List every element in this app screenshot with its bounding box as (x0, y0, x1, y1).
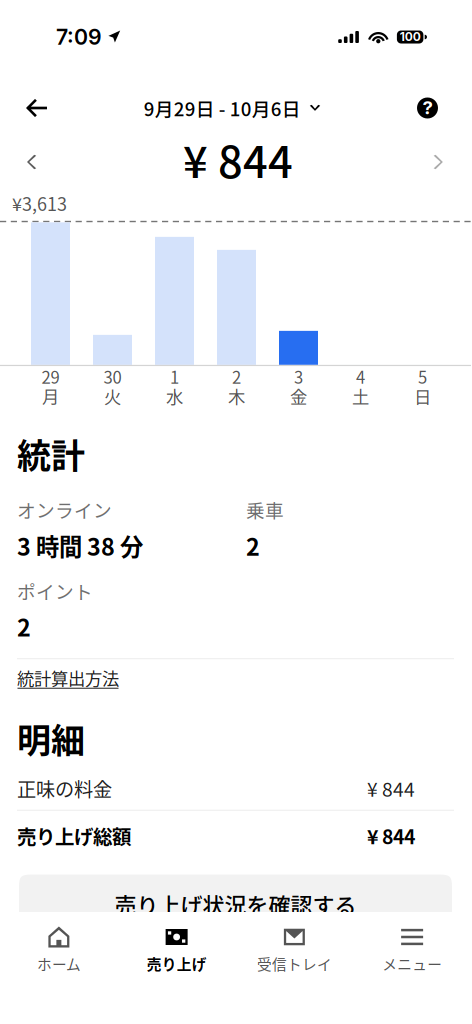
button[interactable]: ホーム (0, 912, 118, 1024)
staticText: 統計算出方法 (17, 665, 119, 690)
staticText: 日 (414, 383, 431, 409)
button[interactable]: 次の週 (418, 143, 471, 181)
staticText: 正味の料金 (17, 774, 112, 802)
staticText: ポイント (17, 577, 93, 604)
staticText: 2 (232, 364, 241, 388)
staticText: 土 (352, 383, 369, 409)
button[interactable]: 9月29日 - 10月6日 (144, 80, 320, 135)
staticText: メニュー (382, 953, 442, 974)
staticText: 9月29日 - 10月6日 (144, 94, 301, 121)
staticText: 金 (290, 383, 307, 409)
button[interactable]: 売り上げ状況を確認する (19, 874, 452, 933)
staticText: ¥3,613 (12, 190, 67, 216)
button[interactable]: 売り上げ (118, 912, 236, 1024)
staticText: 乗車 (246, 496, 284, 523)
button[interactable]: 戻る (0, 83, 59, 133)
staticText: 売り上げ状況を確認する (114, 888, 356, 920)
staticText: 3 (294, 364, 303, 388)
staticText: ¥ 844 (367, 774, 415, 802)
staticText: 火 (104, 383, 121, 409)
staticText: 月 (42, 383, 59, 409)
staticText: 3 時間 38 分 (17, 529, 143, 562)
staticText: ¥ 844 (183, 128, 293, 190)
staticText: 売り上げ (147, 953, 207, 974)
staticText: 1 (170, 364, 179, 388)
button[interactable]: 統計算出方法 (17, 665, 119, 691)
staticText: 統計 (17, 429, 85, 478)
staticText: 木 (228, 383, 245, 409)
button[interactable]: 前の週 (0, 143, 54, 181)
staticText: 30 (103, 364, 121, 388)
staticText: 受信トレイ (257, 953, 332, 974)
staticText: ¥ 844 (367, 822, 415, 850)
button[interactable]: メニュー (353, 912, 471, 1024)
staticText: 明細 (17, 714, 85, 763)
staticText: 7:09 (56, 24, 102, 50)
staticText: 2 (246, 529, 260, 562)
staticText: 2 (17, 609, 31, 643)
staticText: ホーム (37, 953, 81, 974)
staticText: 29 (41, 364, 59, 388)
staticText: オンライン (17, 496, 112, 523)
staticText: 100 (400, 29, 421, 44)
button[interactable]: 受信トレイ (235, 912, 353, 1024)
staticText: 水 (166, 383, 183, 409)
staticText: 売り上げ総額 (17, 822, 131, 850)
staticText: 4 (356, 364, 365, 388)
button[interactable]: ヘルプ (405, 83, 471, 132)
staticText: ? (422, 96, 432, 119)
staticText: 5 (418, 364, 427, 388)
